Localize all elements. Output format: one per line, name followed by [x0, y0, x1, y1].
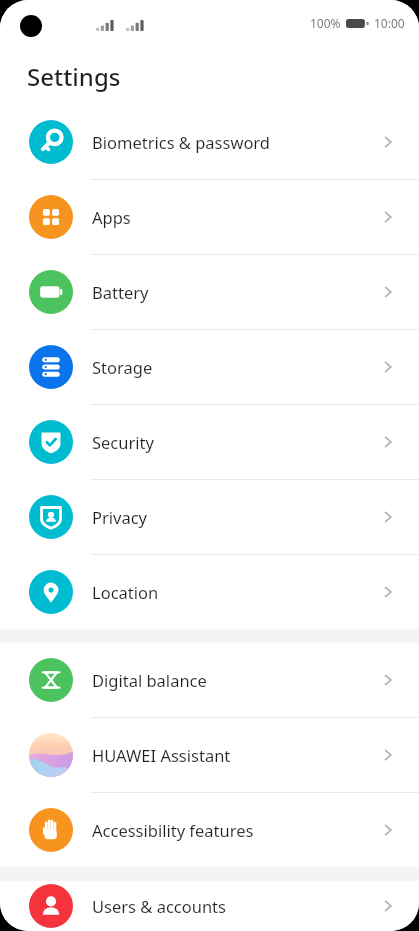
other: Open Apps [379, 208, 397, 226]
button[interactable]: Users & accounts [0, 881, 419, 931]
other: Open Privacy [379, 508, 397, 526]
button[interactable]: Location [0, 555, 419, 629]
staticText: Users & accounts [92, 895, 379, 917]
staticText: Privacy [92, 506, 379, 528]
button[interactable]: HUAWEI Assistant [0, 718, 419, 792]
button[interactable]: Biometrics & password [0, 105, 419, 179]
button[interactable]: Storage [0, 330, 419, 404]
button[interactable]: Privacy [0, 480, 419, 554]
other: Open Location [379, 583, 397, 601]
staticText: Settings [27, 60, 121, 93]
button[interactable]: Digital balance [0, 643, 419, 717]
other: Open Biometrics & password [379, 133, 397, 151]
other: Open Battery [379, 283, 397, 301]
staticText: 10:00 [374, 15, 405, 31]
staticText: Accessibility features [92, 819, 379, 841]
staticText: Storage [92, 356, 379, 378]
other: Open Digital balance [379, 671, 397, 689]
button[interactable]: Battery [0, 255, 419, 329]
button[interactable]: Accessibility features [0, 793, 419, 867]
other: Open Users & accounts [379, 897, 397, 915]
button[interactable]: Security [0, 405, 419, 479]
button[interactable]: Apps [0, 180, 419, 254]
staticText: 100% [310, 15, 341, 31]
other: Open Security [379, 433, 397, 451]
other: Open Storage [379, 358, 397, 376]
staticText: Battery [92, 281, 379, 303]
staticText: HUAWEI Assistant [92, 744, 379, 766]
other: Open HUAWEI Assistant [379, 746, 397, 764]
staticText: Apps [92, 206, 379, 228]
staticText: Location [92, 581, 379, 603]
staticText: Digital balance [92, 669, 379, 691]
staticText: Biometrics & password [92, 131, 379, 153]
staticText: Security [92, 431, 379, 453]
other: Open Accessibility features [379, 821, 397, 839]
